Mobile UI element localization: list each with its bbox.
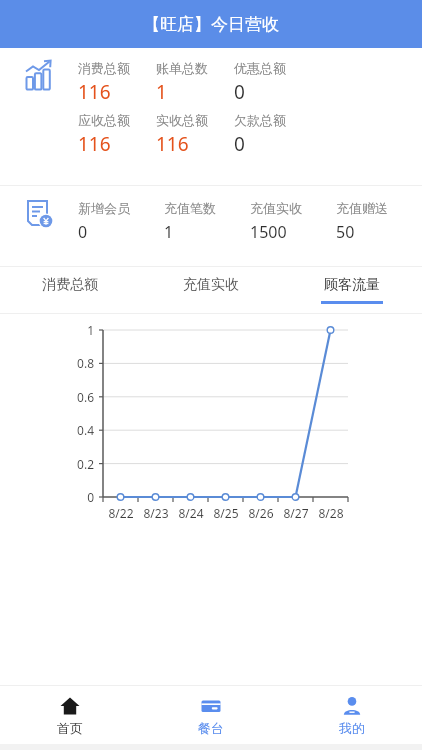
staticText: 1: [156, 79, 167, 105]
other: Member recharge: [23, 198, 55, 230]
staticText: 首页: [57, 720, 83, 736]
staticText: 0.8: [77, 355, 94, 371]
staticText: 116: [156, 131, 189, 157]
staticText: 8/26: [248, 505, 274, 521]
staticText: 我的: [339, 720, 365, 736]
staticText: 8/24: [178, 505, 204, 521]
staticText: 0: [78, 221, 88, 243]
staticText: 8/22: [108, 505, 134, 521]
staticText: 8/28: [318, 505, 344, 521]
staticText: 0: [87, 489, 94, 505]
button[interactable]: 首页: [0, 686, 140, 744]
staticText: 充值赠送: [336, 200, 388, 216]
staticText: 0.2: [77, 456, 94, 472]
button[interactable]: 我的: [281, 686, 422, 744]
staticText: 50: [336, 221, 355, 243]
staticText: 0: [234, 131, 245, 157]
staticText: 账单总数: [156, 60, 208, 76]
staticText: 欠款总额: [234, 112, 286, 128]
staticText: 消费总额: [42, 276, 98, 294]
staticText: 餐台: [198, 720, 224, 736]
staticText: 1: [87, 322, 94, 338]
staticText: 116: [78, 79, 111, 105]
staticText: 充值实收: [250, 200, 302, 216]
staticText: 应收总额: [78, 112, 130, 128]
button[interactable]: 充值实收: [140, 267, 281, 313]
staticText: 顾客流量: [324, 276, 380, 294]
staticText: 8/27: [283, 505, 309, 521]
staticText: 0: [234, 79, 245, 105]
other: Revenue statistics: [22, 58, 56, 92]
staticText: 充值笔数: [164, 200, 216, 216]
staticText: 优惠总额: [234, 60, 286, 76]
staticText: 8/25: [213, 505, 239, 521]
staticText: 实收总额: [156, 112, 208, 128]
button[interactable]: 餐台: [140, 686, 281, 744]
button[interactable]: 消费总额: [0, 267, 140, 313]
button[interactable]: 顾客流量: [281, 267, 422, 313]
staticText: 【旺店】今日营收: [143, 14, 279, 35]
staticText: 充值实收: [183, 276, 239, 294]
staticText: 消费总额: [78, 60, 130, 76]
staticText: 116: [78, 131, 111, 157]
staticText: 新增会员: [78, 200, 130, 216]
staticText: 1: [164, 221, 174, 243]
staticText: 0.4: [77, 422, 94, 438]
staticText: 1500: [250, 221, 287, 243]
staticText: 8/23: [143, 505, 169, 521]
staticText: 0.6: [77, 389, 94, 405]
